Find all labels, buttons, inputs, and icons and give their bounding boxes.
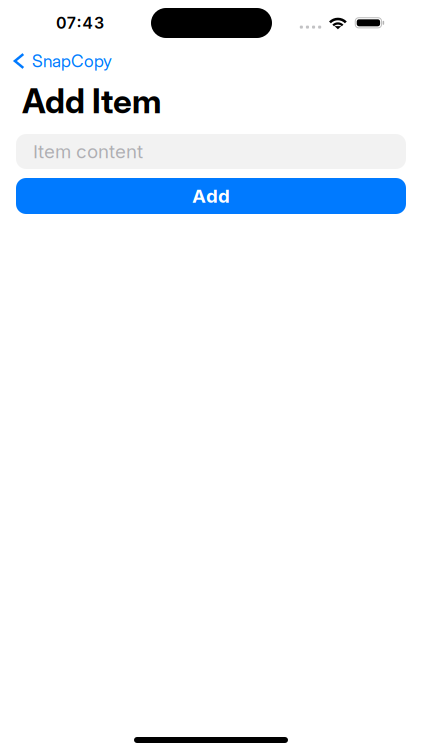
button[interactable]: Add bbox=[0, 178, 422, 214]
staticText: Item content bbox=[33, 140, 143, 163]
staticText: Add bbox=[192, 185, 230, 207]
staticText: Add Item bbox=[22, 81, 161, 121]
staticText: 07:43 bbox=[56, 13, 104, 33]
staticText: SnapCopy bbox=[32, 50, 112, 71]
button[interactable]: SnapCopy bbox=[0, 48, 140, 74]
